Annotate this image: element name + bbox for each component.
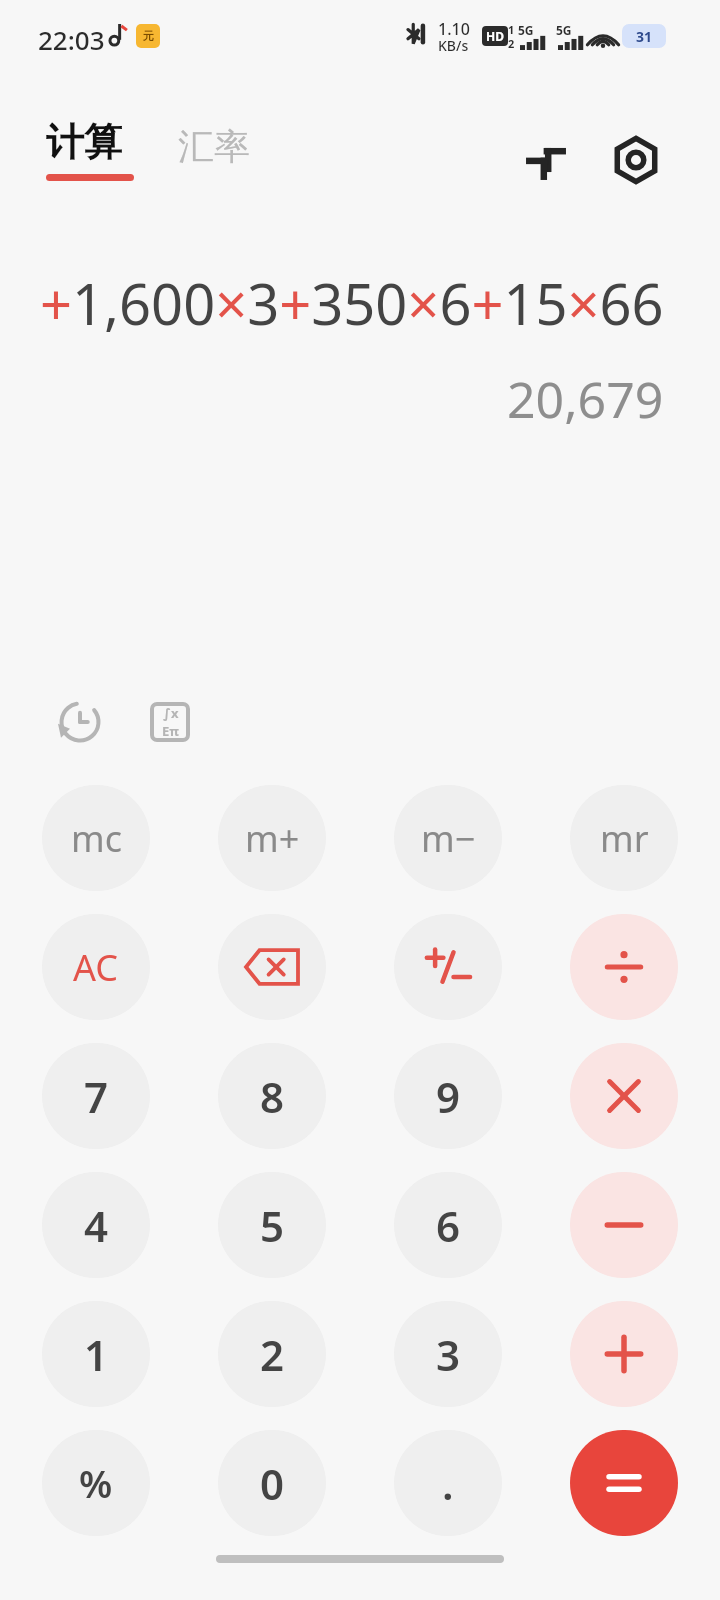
staticText: +1,600×3+350×6+15×66	[40, 265, 664, 341]
button[interactable]: 1	[42, 1301, 150, 1407]
button[interactable]: mr	[570, 785, 678, 891]
button[interactable]	[570, 1172, 678, 1278]
button[interactable]: %	[42, 1430, 150, 1536]
button[interactable]: 2	[218, 1301, 326, 1407]
staticText: m−	[421, 814, 476, 863]
button[interactable]: AC	[42, 914, 150, 1020]
staticText: 22:03	[38, 22, 105, 57]
button[interactable]: 汇率	[170, 120, 258, 173]
button[interactable]: m+	[218, 785, 326, 891]
staticText: m+	[245, 814, 300, 863]
staticText: 5G	[556, 22, 572, 38]
staticText: 3	[436, 1326, 461, 1383]
button[interactable]: 6	[394, 1172, 502, 1278]
button[interactable]	[570, 1301, 678, 1407]
button[interactable]: 5	[218, 1172, 326, 1278]
staticText: 汇率	[178, 124, 250, 169]
staticText: 1.10	[438, 18, 470, 40]
staticText: %	[79, 1457, 113, 1509]
button[interactable]: Delete	[218, 914, 326, 1020]
button[interactable]	[570, 914, 678, 1020]
staticText: 2	[508, 36, 515, 51]
staticText: 1	[508, 22, 515, 37]
staticText: 9	[436, 1068, 461, 1125]
button[interactable]: Settings	[598, 122, 674, 198]
staticText: 5G	[518, 22, 534, 38]
staticText: HD	[486, 28, 504, 44]
staticText: 8	[260, 1068, 285, 1125]
staticText: KB/s	[438, 36, 469, 55]
button[interactable]: 7	[42, 1043, 150, 1149]
button[interactable]: .	[394, 1430, 502, 1536]
button[interactable]	[394, 914, 502, 1020]
button[interactable]: 8	[218, 1043, 326, 1149]
button[interactable]: 4	[42, 1172, 150, 1278]
staticText: 5	[260, 1197, 285, 1254]
staticText: 2	[260, 1326, 285, 1383]
staticText: 计算	[46, 118, 122, 166]
staticText: mr	[600, 814, 649, 863]
button[interactable]: m−	[394, 785, 502, 891]
button[interactable]: History	[48, 690, 112, 754]
staticText: 6	[436, 1197, 461, 1254]
staticText: ∫x	[163, 704, 179, 722]
button[interactable]: Floating window	[508, 122, 584, 198]
staticText: 元	[143, 29, 154, 43]
button[interactable]: 9	[394, 1043, 502, 1149]
button[interactable]: mc	[42, 785, 150, 891]
staticText: 7	[84, 1068, 109, 1125]
staticText: 0	[260, 1455, 285, 1512]
button[interactable]	[570, 1430, 678, 1536]
staticText: 4	[84, 1197, 109, 1254]
staticText: mc	[71, 814, 122, 863]
button[interactable]: 0	[218, 1430, 326, 1536]
staticText: 1	[84, 1326, 109, 1383]
staticText: .	[442, 1455, 454, 1512]
button[interactable]	[570, 1043, 678, 1149]
staticText: Eπ	[162, 722, 179, 740]
staticText: 31	[636, 27, 653, 46]
button[interactable]: Scientific mode	[138, 690, 202, 754]
staticText: 20,679	[507, 365, 664, 433]
staticText: AC	[73, 943, 119, 992]
button[interactable]: 计算	[40, 118, 140, 181]
button[interactable]: 3	[394, 1301, 502, 1407]
